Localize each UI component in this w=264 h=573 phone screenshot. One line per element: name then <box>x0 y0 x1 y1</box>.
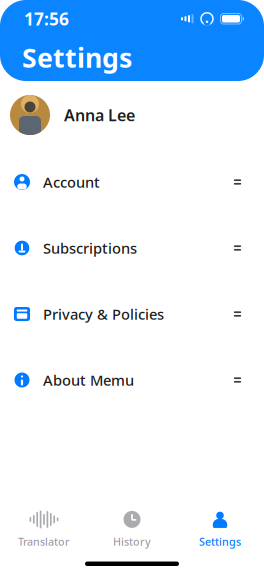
staticText: Privacy & Policies <box>43 304 164 324</box>
button[interactable]: Translator <box>0 504 88 555</box>
staticText: Settings <box>199 534 241 549</box>
button[interactable]: Anna Lee <box>0 81 264 149</box>
staticText: Anna Lee <box>64 104 135 126</box>
staticText: Account <box>43 172 100 192</box>
button[interactable]: Privacy & Policies <box>0 281 264 347</box>
staticText: History <box>113 534 151 549</box>
button[interactable]: Subscriptions <box>0 215 264 281</box>
staticText: Translator <box>18 534 70 549</box>
button[interactable]: About Memu <box>0 347 264 413</box>
staticText: About Memu <box>43 370 134 390</box>
staticText: Settings <box>22 40 132 75</box>
staticText: 17:56 <box>24 7 69 30</box>
button[interactable]: Settings <box>176 504 264 555</box>
button[interactable]: History <box>88 504 176 555</box>
button[interactable]: Account <box>0 149 264 215</box>
staticText: Subscriptions <box>43 238 137 258</box>
